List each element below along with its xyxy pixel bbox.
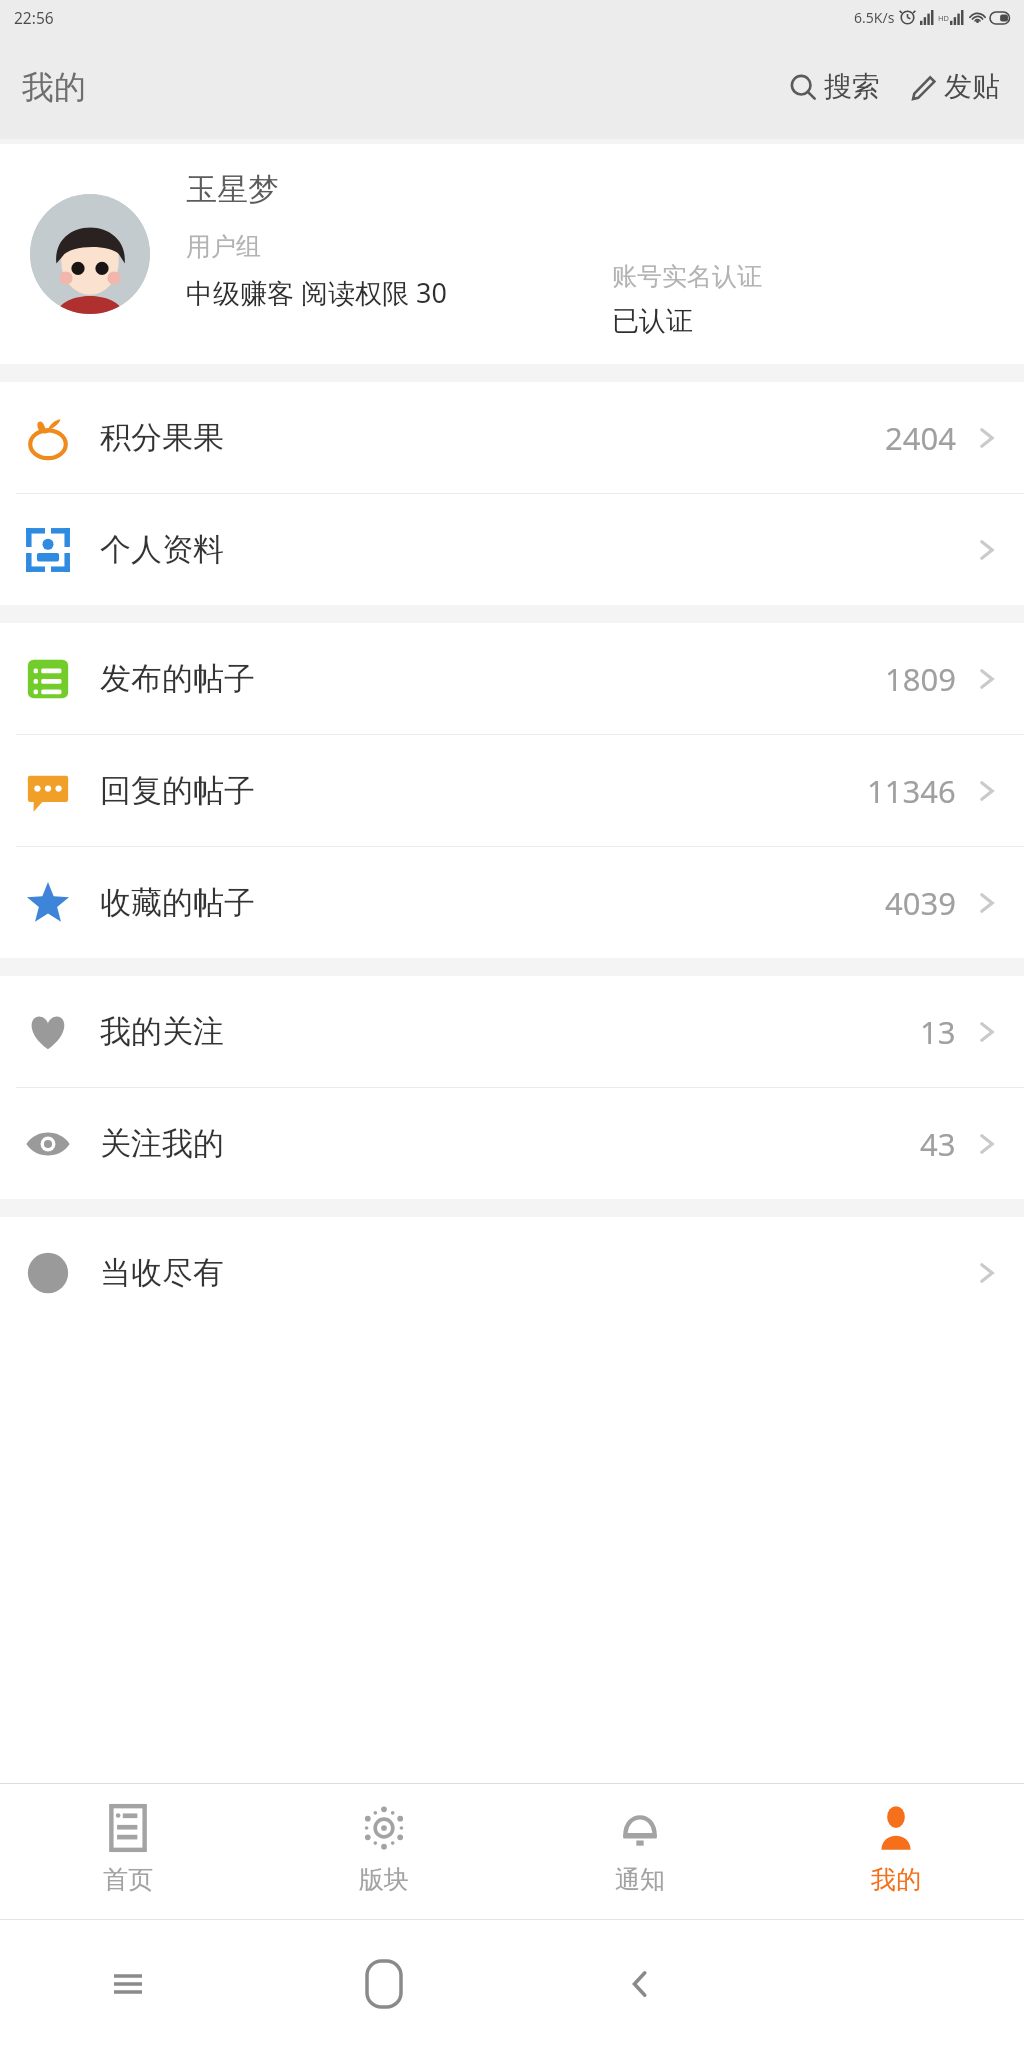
staticText: 搜索	[824, 69, 880, 104]
button[interactable]: Home	[256, 1920, 512, 2048]
button[interactable]: 我的	[768, 1784, 1024, 1919]
button[interactable]: 回复的帖子	[0, 735, 1024, 846]
button[interactable]: Recents	[0, 1920, 256, 2048]
staticText: 发贴	[944, 69, 1000, 104]
staticText: 回复的帖子	[100, 771, 255, 810]
staticText: 个人资料	[100, 530, 224, 569]
staticText: 版块	[359, 1864, 409, 1895]
button[interactable]: 我的关注	[0, 976, 1024, 1087]
button[interactable]: 发贴	[902, 61, 1006, 112]
staticText: 用户组	[186, 231, 261, 262]
staticText: 玉星梦	[186, 170, 279, 209]
staticText: 6.5K/s	[854, 8, 895, 27]
button[interactable]: 收藏的帖子	[0, 847, 1024, 958]
staticText: 我的	[22, 67, 86, 107]
staticText: HD	[938, 13, 950, 23]
staticText: 我的	[871, 1864, 921, 1895]
staticText: 当收尽有	[100, 1253, 224, 1292]
button[interactable]: 玉星梦	[0, 144, 1024, 364]
button[interactable]: 搜索	[782, 61, 886, 112]
staticText: 13	[920, 1011, 956, 1053]
button[interactable]: 首页	[0, 1784, 256, 1919]
staticText: 积分果果	[100, 418, 224, 457]
button[interactable]: 版块	[256, 1784, 512, 1919]
staticText: 2404	[885, 417, 956, 459]
button[interactable]: 通知	[512, 1784, 768, 1919]
staticText: 11346	[867, 770, 956, 812]
staticText: 发布的帖子	[100, 659, 255, 698]
staticText: 收藏的帖子	[100, 883, 255, 922]
staticText: 43	[920, 1123, 956, 1165]
staticText: 已认证	[612, 304, 693, 338]
staticText: 1809	[885, 658, 956, 700]
staticText: 中级赚客 阅读权限 30	[186, 274, 447, 311]
staticText: 4039	[885, 882, 956, 924]
staticText: 我的关注	[100, 1012, 224, 1051]
staticText: 22:56	[14, 7, 54, 28]
staticText: 首页	[103, 1864, 153, 1895]
button[interactable]: 发布的帖子	[0, 623, 1024, 734]
button[interactable]: 积分果果	[0, 382, 1024, 493]
button[interactable]: 关注我的	[0, 1088, 1024, 1199]
button[interactable]: Back	[512, 1920, 768, 2048]
staticText: 账号实名认证	[612, 261, 762, 292]
staticText: 通知	[615, 1864, 665, 1895]
staticText: 关注我的	[100, 1124, 224, 1163]
button[interactable]: 个人资料	[0, 494, 1024, 605]
button[interactable]: 当收尽有	[0, 1217, 1024, 1328]
